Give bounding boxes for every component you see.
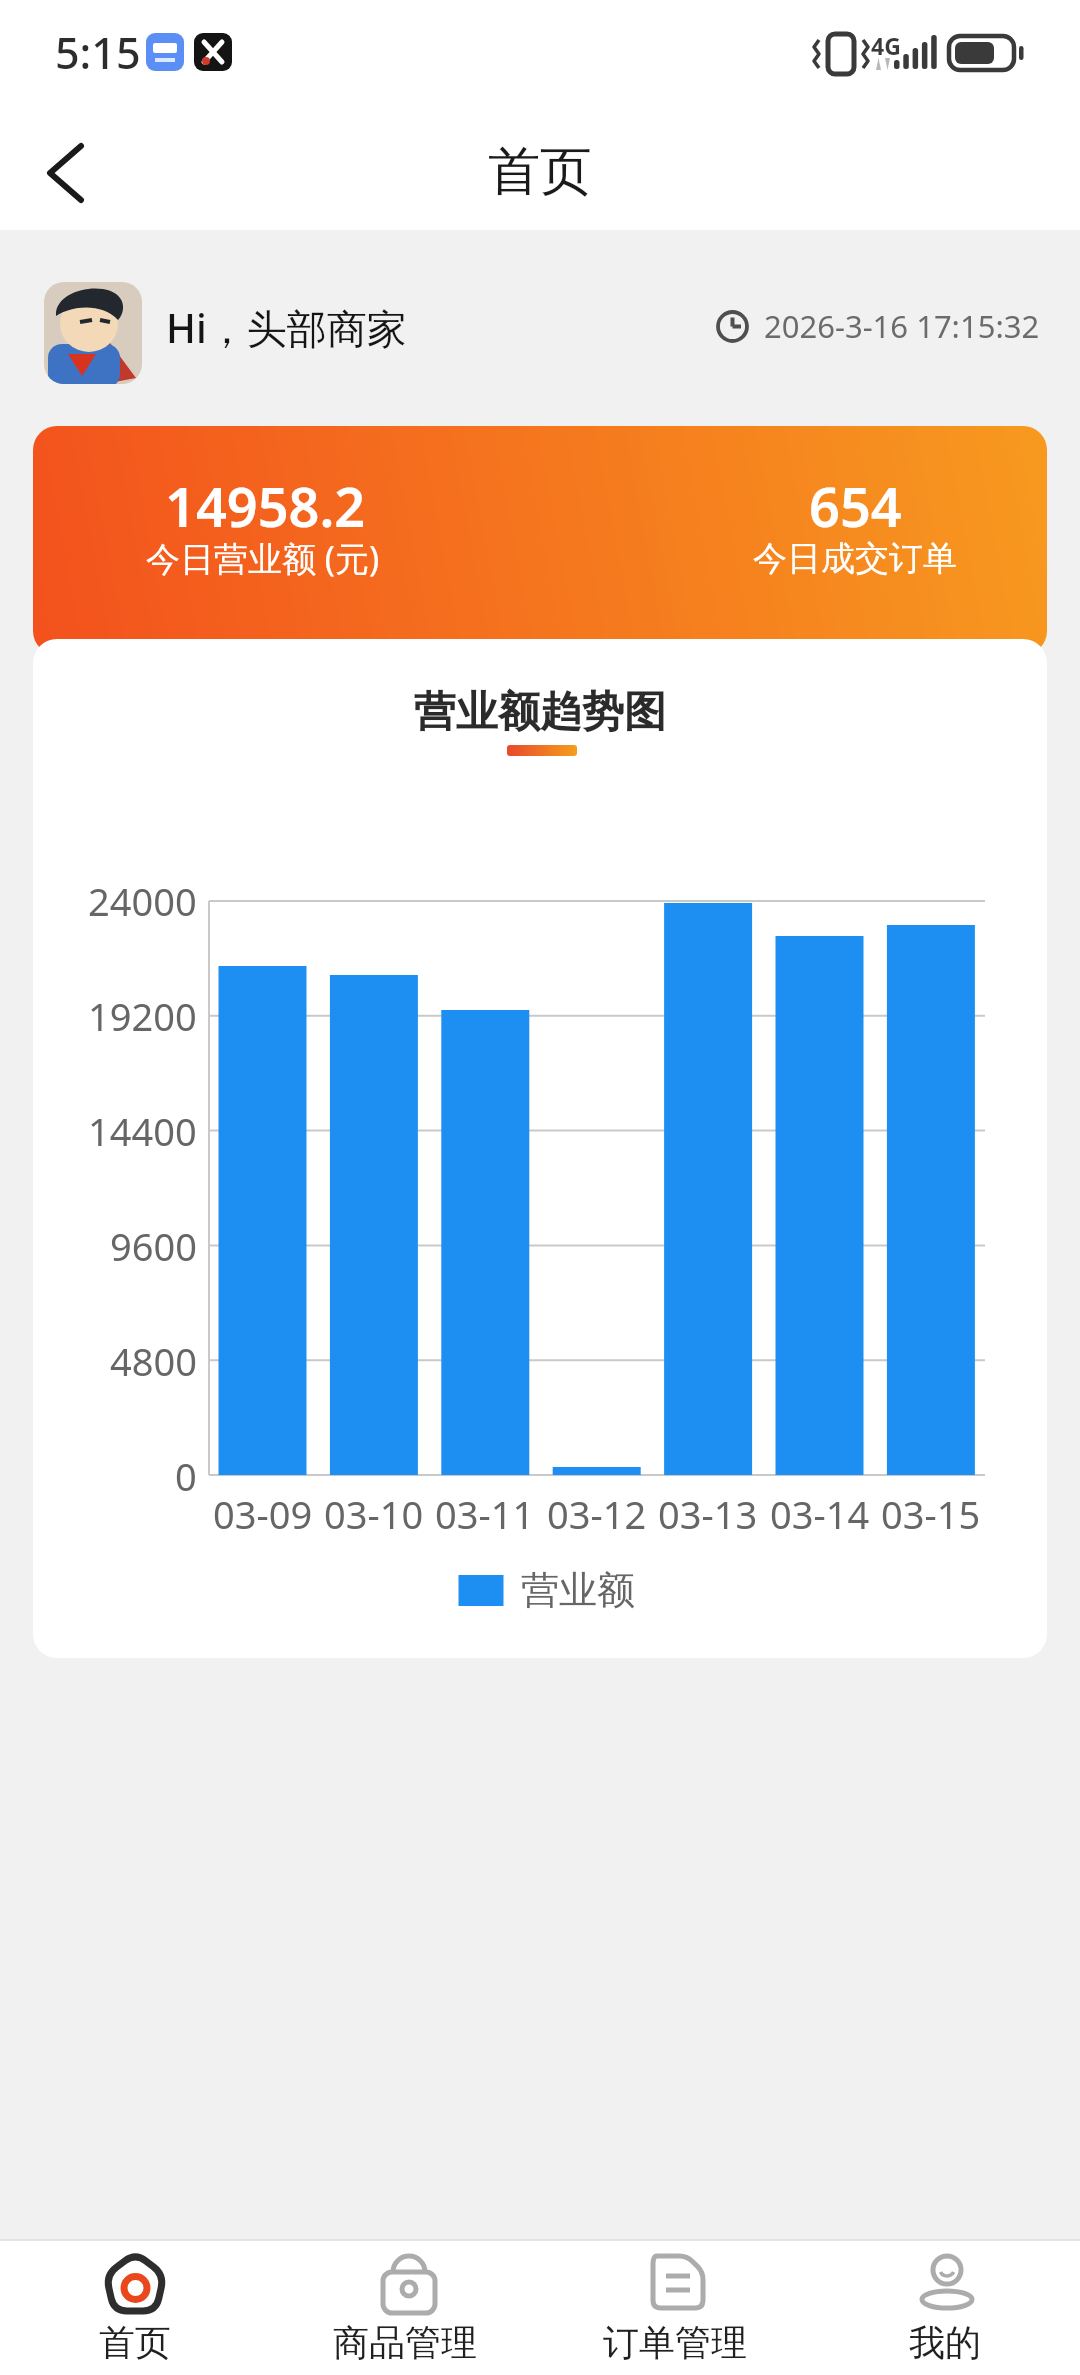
- staticText: 今日成交订单: [753, 537, 957, 580]
- button[interactable]: [20, 130, 110, 216]
- staticText: 03-14: [770, 1488, 870, 1540]
- staticText: 首页: [488, 139, 592, 205]
- staticText: 03-12: [547, 1488, 647, 1540]
- staticText: 首页: [99, 2320, 171, 2365]
- staticText: 03-10: [324, 1488, 424, 1540]
- staticText: 03-11: [435, 1488, 535, 1540]
- staticText: 19200: [88, 990, 197, 1042]
- staticText: 5:15: [55, 23, 141, 82]
- staticText: Hi，头部商家: [166, 300, 407, 355]
- staticText: 03-13: [658, 1488, 758, 1540]
- button[interactable]: [44, 282, 142, 384]
- button[interactable]: 商品管理: [305, 2245, 505, 2370]
- staticText: 9600: [110, 1220, 197, 1272]
- staticText: 03-15: [881, 1488, 981, 1540]
- staticText: 我的: [909, 2320, 981, 2365]
- button[interactable]: 首页: [35, 2245, 235, 2370]
- staticText: 商品管理: [333, 2320, 477, 2365]
- staticText: 24000: [88, 875, 197, 927]
- staticText: 4800: [110, 1335, 197, 1387]
- staticText: 营业额趋势图: [414, 686, 666, 739]
- staticText: 今日营业额 (元): [146, 535, 380, 581]
- staticText: 2026-3-16 17:15:32: [764, 305, 1040, 347]
- button[interactable]: 我的: [845, 2245, 1045, 2370]
- staticText: 4G: [871, 30, 901, 61]
- staticText: 14958.2: [165, 469, 366, 543]
- staticText: 0: [175, 1450, 197, 1502]
- button[interactable]: 14958.2: [33, 426, 1047, 655]
- staticText: 654: [809, 469, 902, 543]
- staticText: 订单管理: [603, 2320, 747, 2365]
- staticText: 14400: [88, 1105, 197, 1157]
- staticText: 03-09: [213, 1488, 313, 1540]
- staticText: 营业额: [521, 1566, 635, 1614]
- button[interactable]: 订单管理: [575, 2245, 775, 2370]
